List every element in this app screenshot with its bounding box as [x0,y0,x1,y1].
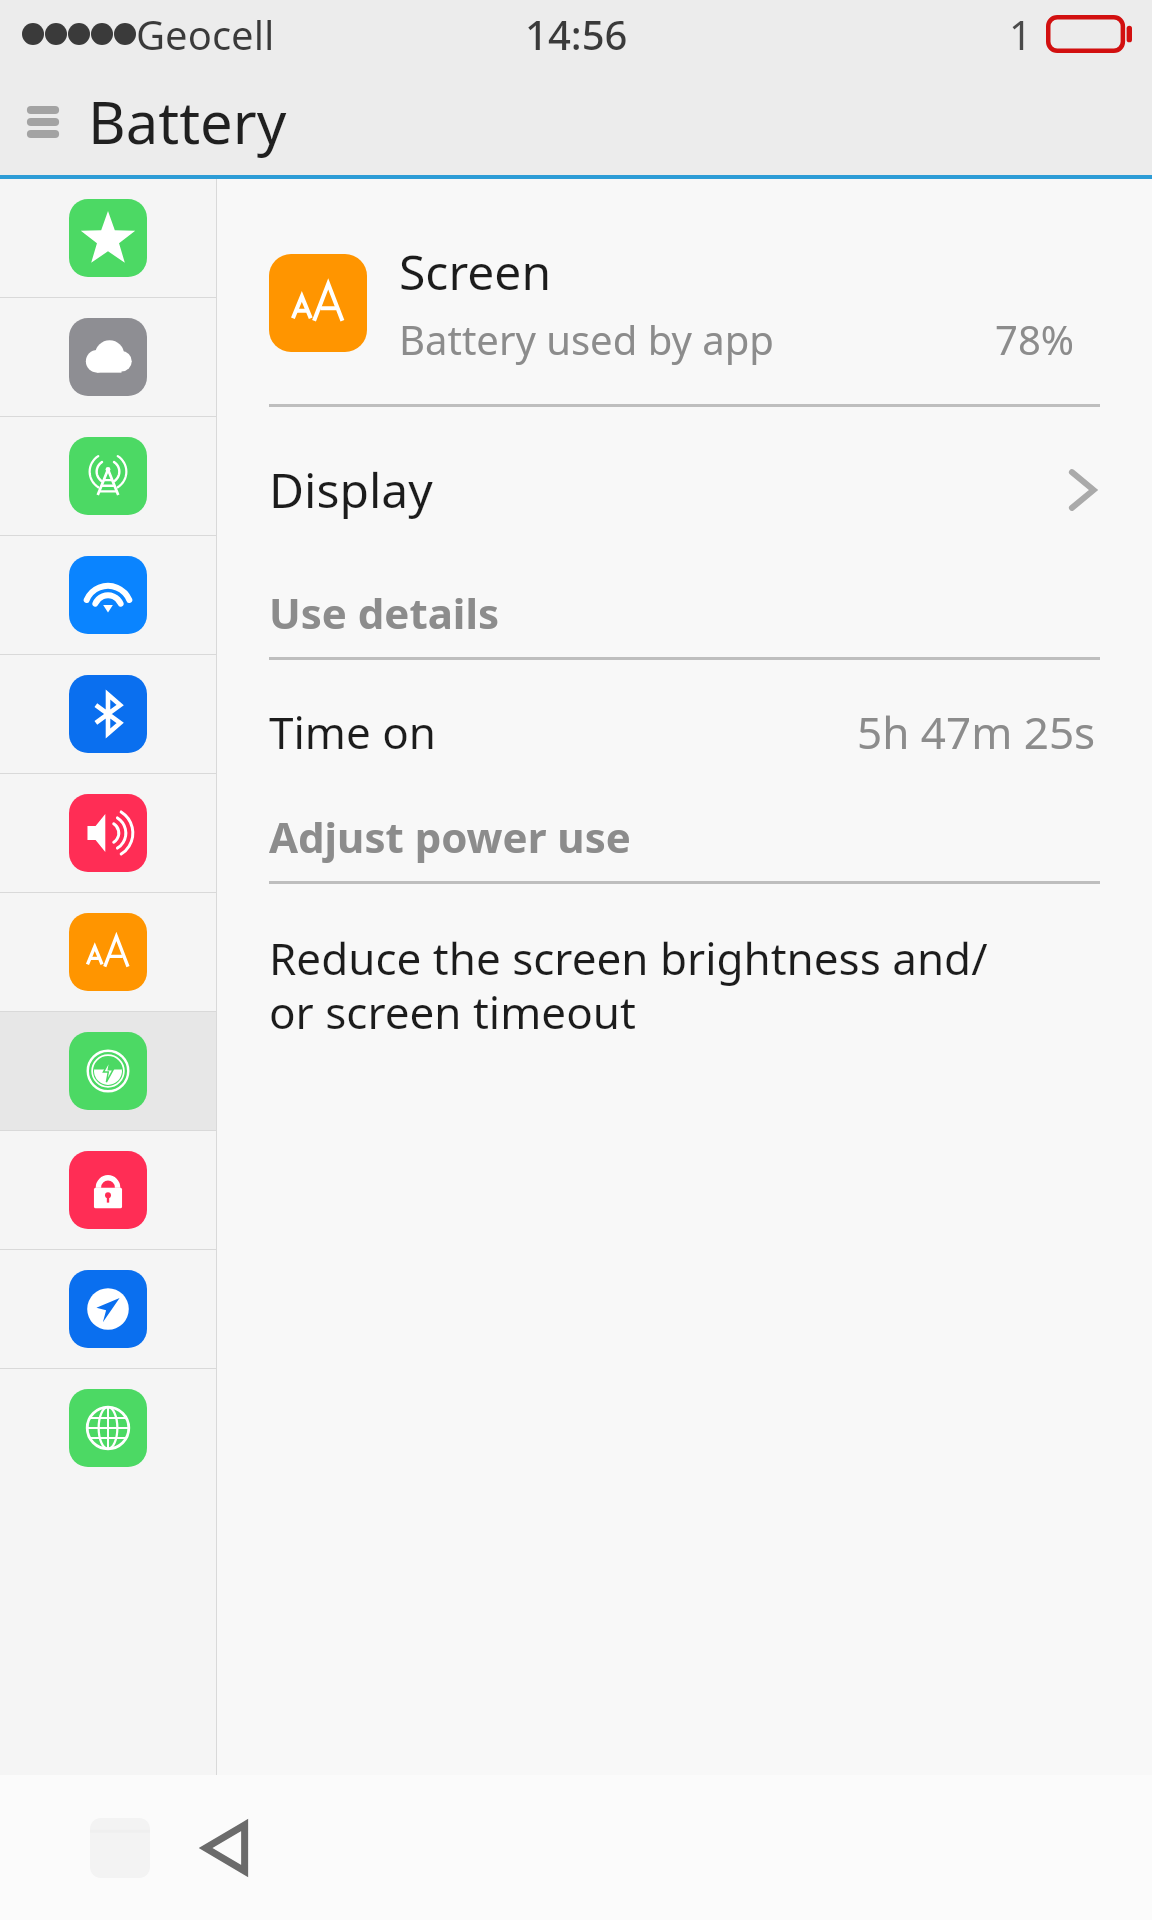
button[interactable]: CLOUD [0,298,216,416]
button[interactable]: BT [0,655,216,773]
staticText: Adjust power use [269,808,631,865]
button[interactable]: STAR [0,179,216,297]
staticText: Screen [399,239,552,304]
button[interactable]: GLOBE [0,1369,216,1487]
staticText: Reduce the screen brightness and/ or scr… [269,928,988,1042]
button[interactable]: LOCK [0,1131,216,1249]
staticText: Display [269,457,433,522]
button[interactable]: Display [217,451,1152,528]
staticText: Battery used by app [399,312,774,366]
button[interactable]: Recents [75,1803,165,1893]
staticText: 1 [1009,7,1032,61]
button[interactable]: NAV [0,1250,216,1368]
button[interactable]: Back [175,1795,280,1900]
button[interactable]: TOWER [0,417,216,535]
button[interactable]: WIFI [0,536,216,654]
staticText: Use details [269,584,499,641]
other: Menu [20,99,66,145]
button[interactable]: POWER [0,1012,216,1130]
staticText: 14:56 [525,7,628,61]
button[interactable]: SOUND [0,774,216,892]
staticText: 5h 47m 25s [857,702,1096,762]
button[interactable]: Menu [0,68,1152,175]
button[interactable]: FONT [0,893,216,1011]
staticText: 78% [995,312,1074,366]
staticText: Geocell [136,7,275,61]
staticText: Battery [88,82,287,161]
staticText: Time on [269,702,437,762]
